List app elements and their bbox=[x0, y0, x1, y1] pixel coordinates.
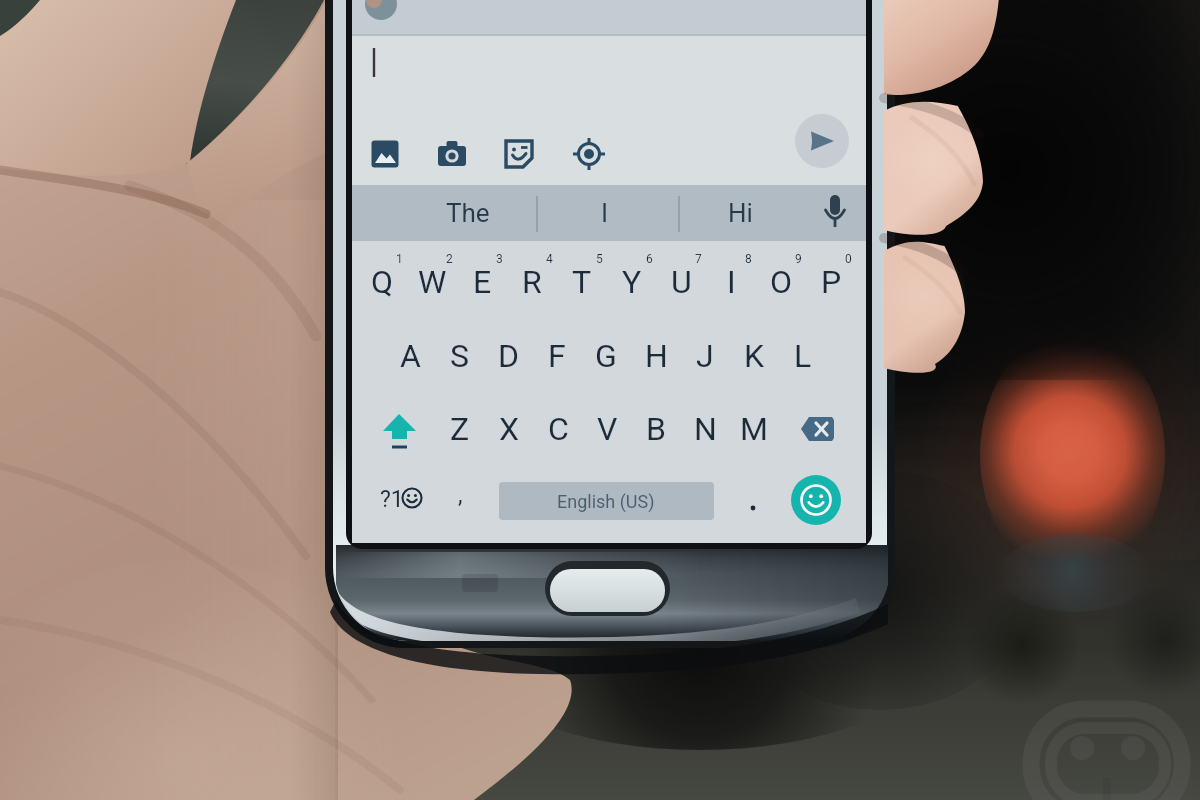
staticText: ?1 bbox=[380, 486, 404, 513]
staticText: U bbox=[671, 263, 692, 301]
staticText: D bbox=[498, 337, 519, 375]
staticText: 6 bbox=[646, 252, 653, 266]
staticText: Z bbox=[450, 410, 470, 448]
staticText: I bbox=[601, 198, 609, 228]
button[interactable]: O bbox=[721, 253, 841, 311]
staticText: P bbox=[821, 263, 842, 301]
button[interactable]: 6 bbox=[589, 230, 709, 288]
button[interactable]: 0 bbox=[788, 230, 908, 288]
button[interactable]: 4 bbox=[489, 230, 609, 288]
staticText: 4 bbox=[546, 252, 553, 266]
button[interactable]: 8 bbox=[688, 230, 808, 288]
button[interactable]: 3 bbox=[439, 230, 559, 288]
staticText: 2 bbox=[446, 252, 453, 266]
button[interactable]: D bbox=[448, 327, 568, 385]
staticText: K bbox=[744, 337, 765, 375]
button[interactable]: 9 bbox=[738, 230, 858, 288]
button[interactable]: T bbox=[522, 253, 642, 311]
staticText: M bbox=[740, 410, 768, 448]
button[interactable]: N bbox=[645, 400, 765, 458]
staticText: R bbox=[522, 263, 542, 301]
staticText: The bbox=[446, 198, 490, 228]
staticText: B bbox=[646, 410, 666, 448]
staticText: J bbox=[696, 337, 714, 375]
staticText: 8 bbox=[745, 252, 752, 266]
staticText: E bbox=[473, 263, 492, 301]
button[interactable]: Z bbox=[400, 400, 520, 458]
button[interactable]: F bbox=[497, 327, 617, 385]
button[interactable]: C bbox=[498, 400, 618, 458]
button[interactable]: V bbox=[547, 400, 667, 458]
staticText: H bbox=[645, 337, 668, 375]
staticText: I bbox=[727, 263, 736, 301]
staticText: O bbox=[770, 263, 793, 301]
button[interactable]: M bbox=[694, 400, 814, 458]
staticText: A bbox=[400, 337, 421, 375]
button[interactable]: J bbox=[645, 327, 765, 385]
button[interactable]: G bbox=[546, 327, 666, 385]
button[interactable]: A bbox=[350, 327, 470, 385]
staticText: S bbox=[450, 337, 469, 375]
staticText: 9 bbox=[795, 252, 802, 266]
button[interactable]: I bbox=[671, 253, 791, 311]
staticText: N bbox=[694, 410, 717, 448]
staticText: L bbox=[794, 337, 812, 375]
button[interactable]: H bbox=[596, 327, 716, 385]
button[interactable]: X bbox=[449, 400, 569, 458]
button[interactable]: K bbox=[694, 327, 814, 385]
staticText: 1 bbox=[396, 252, 403, 266]
button[interactable]: ?1 bbox=[332, 470, 452, 528]
button[interactable]: R bbox=[472, 253, 592, 311]
staticText: F bbox=[548, 337, 566, 375]
staticText: G bbox=[595, 337, 617, 375]
button[interactable]: English (US) bbox=[546, 472, 666, 530]
staticText: V bbox=[597, 410, 618, 448]
staticText: Q bbox=[371, 263, 394, 301]
button[interactable]: , bbox=[400, 466, 520, 524]
staticText: X bbox=[499, 410, 520, 448]
button[interactable]: L bbox=[743, 327, 863, 385]
button[interactable]: Hi bbox=[680, 184, 800, 242]
staticText: Y bbox=[622, 263, 642, 301]
staticText: English (US) bbox=[557, 491, 655, 512]
button[interactable]: 5 bbox=[539, 230, 659, 288]
button[interactable]: 2 bbox=[389, 230, 509, 288]
button[interactable]: S bbox=[399, 327, 519, 385]
button[interactable]: I bbox=[545, 184, 665, 242]
button[interactable]: B bbox=[596, 400, 716, 458]
staticText: 0 bbox=[845, 252, 852, 266]
button[interactable]: 1 bbox=[339, 230, 459, 288]
staticText: 7 bbox=[695, 252, 702, 266]
button[interactable]: W bbox=[372, 253, 492, 311]
staticText: 3 bbox=[496, 252, 503, 266]
button[interactable]: P bbox=[771, 253, 891, 311]
button[interactable]: E bbox=[422, 253, 542, 311]
button[interactable]: Q bbox=[322, 253, 442, 311]
staticText: T bbox=[572, 263, 592, 301]
button[interactable]: Y bbox=[572, 253, 692, 311]
button[interactable]: The bbox=[408, 184, 528, 242]
staticText: Hi bbox=[728, 198, 753, 228]
staticText: C bbox=[548, 410, 569, 448]
button[interactable]: U bbox=[621, 253, 741, 311]
button[interactable]: 7 bbox=[638, 230, 758, 288]
staticText: 5 bbox=[596, 252, 603, 266]
staticText: , bbox=[458, 482, 463, 509]
staticText: W bbox=[418, 263, 447, 301]
